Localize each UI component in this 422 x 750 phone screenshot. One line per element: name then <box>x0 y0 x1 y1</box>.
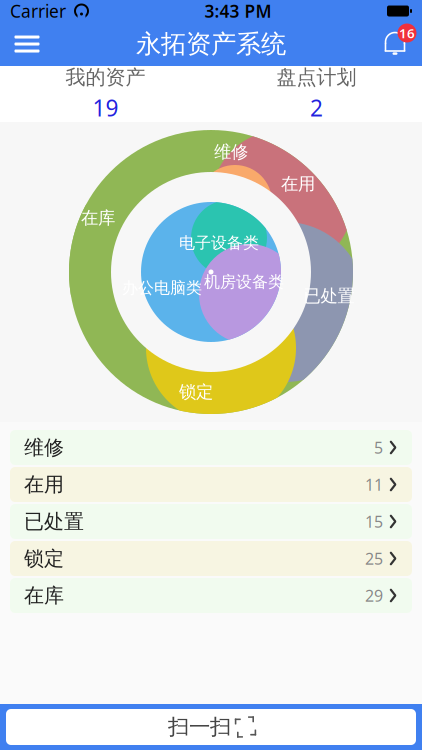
staticText: 在库 <box>24 583 64 608</box>
staticText: 盘点计划 <box>276 65 356 90</box>
staticText: 3:43 PM <box>204 0 271 22</box>
staticText: 已处置 <box>303 285 354 307</box>
staticText: Carrier <box>10 0 66 22</box>
staticText: 电子设备类 <box>179 233 259 253</box>
button[interactable]: 在库 <box>10 578 412 613</box>
staticText: 5 <box>374 437 383 458</box>
staticText: 在库 <box>81 207 115 229</box>
button[interactable]: 已处置 <box>10 504 412 539</box>
button[interactable]: 维修 <box>10 430 412 465</box>
staticText: 锁定 <box>24 546 64 571</box>
staticText: 2 <box>310 93 323 123</box>
staticText: 维修 <box>214 141 248 163</box>
staticText: 11 <box>365 474 383 495</box>
button[interactable]: 我的资产 <box>0 56 211 132</box>
staticText: 已处置 <box>24 509 84 534</box>
staticText: 永拓资产系统 <box>136 28 286 59</box>
button[interactable]: 盘点计划 <box>211 56 422 132</box>
button[interactable]: Menu <box>4 22 50 66</box>
staticText: 维修 <box>24 435 64 460</box>
staticText: 在用 <box>281 173 315 195</box>
staticText: 办公电脑类 <box>122 278 202 298</box>
staticText: 15 <box>365 511 383 532</box>
button[interactable]: 扫一扫 <box>0 704 422 750</box>
staticText: 25 <box>365 548 383 569</box>
staticText: 19 <box>92 93 118 123</box>
button[interactable]: 锁定 <box>10 541 412 576</box>
staticText: 29 <box>365 585 383 606</box>
button[interactable]: Notifications <box>372 22 418 66</box>
button[interactable]: 在用 <box>10 467 412 502</box>
staticText: 在用 <box>24 472 64 497</box>
staticText: 我的资产 <box>65 65 145 90</box>
staticText: 16 <box>399 24 415 42</box>
staticText: 锁定 <box>179 381 213 403</box>
staticText: 扫一扫 <box>168 714 231 740</box>
staticText: 机房设备类 <box>204 272 284 292</box>
